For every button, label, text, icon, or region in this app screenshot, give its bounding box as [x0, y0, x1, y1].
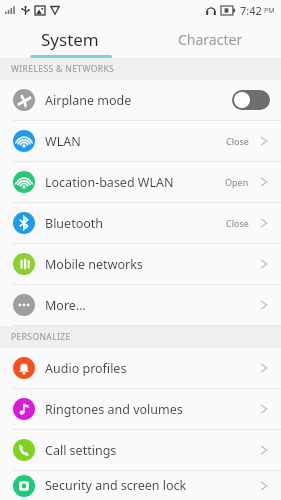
staticText: 7:42 — [240, 3, 262, 18]
staticText: Close — [226, 217, 249, 229]
button[interactable]: Bluetooth — [0, 203, 281, 244]
staticText: Mobile networks — [45, 256, 143, 273]
button[interactable]: More... — [0, 285, 281, 326]
staticText: Security and screen lock — [45, 477, 187, 494]
button[interactable]: Ringtones and volumes — [0, 389, 281, 430]
button[interactable]: Security and screen lock — [0, 471, 281, 500]
staticText: Bluetooth — [45, 215, 104, 232]
staticText: WLAN — [45, 133, 81, 150]
button[interactable]: Audio profiles — [0, 348, 281, 389]
staticText: Open — [225, 176, 249, 188]
button[interactable]: Call settings — [0, 430, 281, 471]
staticText: Character — [178, 30, 243, 49]
staticText: System — [41, 28, 99, 51]
staticText: More... — [45, 297, 86, 314]
staticText: Ringtones and volumes — [45, 401, 183, 418]
staticText: PM — [264, 6, 275, 16]
staticText: Location-based WLAN — [45, 174, 174, 191]
staticText: Close — [226, 135, 249, 147]
staticText: Call settings — [45, 442, 117, 459]
button[interactable]: Location-based WLAN — [0, 162, 281, 203]
button[interactable]: System — [0, 20, 140, 58]
staticText: Airplane mode — [45, 92, 132, 109]
staticText: Audio profiles — [45, 360, 127, 377]
button[interactable]: Airplane mode — [0, 80, 281, 121]
button[interactable]: WLAN — [0, 121, 281, 162]
button[interactable]: Character — [140, 20, 281, 58]
staticText: PERSONALIZE — [11, 331, 71, 343]
staticText: WIRELESS & NETWORKS — [11, 63, 115, 75]
button[interactable]: Airplane mode toggle — [232, 90, 270, 110]
button[interactable]: Mobile networks — [0, 244, 281, 285]
